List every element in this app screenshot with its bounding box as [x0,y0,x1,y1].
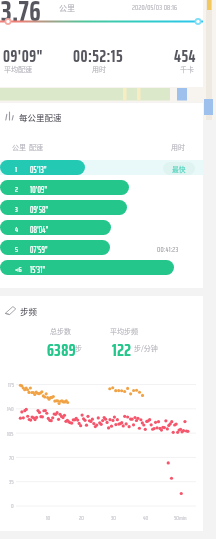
staticText: 70 [9,453,14,463]
button[interactable]: 3 [0,200,203,215]
staticText: 步/分钟 [134,343,158,353]
button[interactable]: 5 [0,240,203,255]
staticText: 总步数 [50,326,71,336]
staticText: 09'58" [30,203,49,216]
staticText: 05'13" [30,163,47,176]
staticText: 00:52:15 [73,42,124,70]
staticText: 454 [174,42,196,70]
staticText: 122 [112,336,132,364]
staticText: 09'09" [3,42,43,70]
staticText: 140 [7,404,14,414]
staticText: 35 [9,477,14,487]
staticText: 40 [143,513,149,523]
staticText: 15'31" [30,263,46,276]
staticText: 步 [75,343,82,353]
staticText: 3.76 [1,0,41,34]
staticText: 105 [7,429,14,439]
staticText: 公里 [59,2,75,14]
other: Cadence [5,306,16,315]
staticText: 10 [46,513,51,523]
staticText: 平均配速 [4,64,32,74]
staticText: 10'09" [30,183,48,196]
staticText: 08'04" [30,223,49,236]
staticText: 2020/05/03 08:16 [132,1,178,14]
staticText: 最快 [172,164,186,174]
staticText: 每公里配速 [19,111,62,123]
staticText: 6389 [47,336,77,364]
staticText: 平均步频 [110,326,138,336]
staticText: 1 [15,163,17,176]
staticText: 175 [8,380,14,390]
staticText: 0 [11,501,14,511]
button[interactable]: 最快 [163,162,195,175]
staticText: 配速 [29,142,43,152]
staticText: 4 [15,223,19,236]
staticText: 00:41:23 [157,243,179,256]
staticText: 50min [174,513,187,523]
staticText: 2 [15,183,18,196]
staticText: 30 [111,513,116,523]
button[interactable]: <6 [0,260,203,275]
staticText: 千卡 [180,64,194,74]
other: Pace per kilometre [5,112,14,120]
button[interactable]: 4 [0,220,203,235]
staticText: 用时 [171,142,185,152]
staticText: 步频 [20,305,38,317]
button[interactable]: 2 [0,180,203,195]
staticText: <6 [15,263,22,276]
staticText: 5 [15,243,18,256]
button[interactable]: 1 [0,160,203,175]
staticText: 20 [79,513,84,523]
staticText: 用时 [92,64,106,74]
staticText: 公里 [12,142,26,152]
staticText: 3 [15,203,18,216]
staticText: 07'59" [30,243,48,256]
